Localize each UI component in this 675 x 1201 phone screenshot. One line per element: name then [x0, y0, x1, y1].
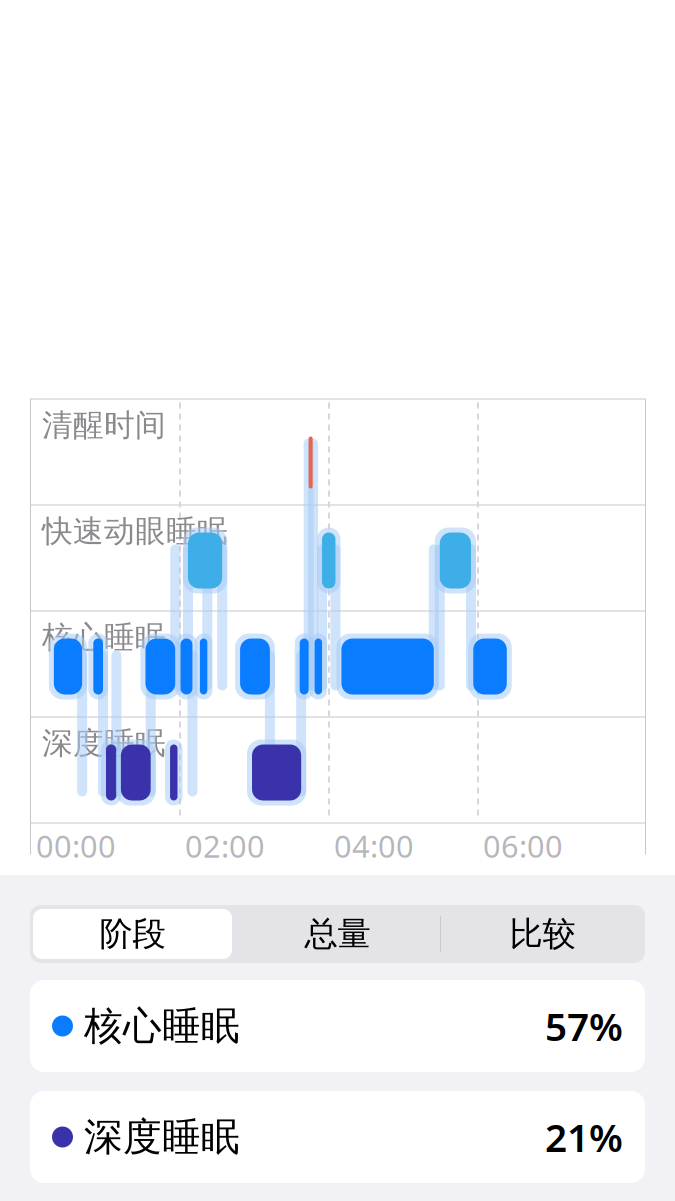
staticText: 阶段	[99, 913, 165, 954]
staticText: 清醒时间	[42, 406, 166, 444]
staticText: 02:00	[185, 825, 265, 866]
button[interactable]: 核心睡眠	[30, 980, 645, 1072]
staticText: 比较	[509, 913, 575, 954]
staticText: 快速动眼睡眠	[42, 512, 228, 550]
staticText: 深度睡眠	[84, 1113, 240, 1161]
staticText: 04:00	[334, 825, 414, 866]
button[interactable]: 总量	[235, 905, 440, 963]
staticText: 00:00	[36, 825, 116, 866]
staticText: 06:00	[483, 825, 563, 866]
button[interactable]: 阶段	[30, 905, 235, 963]
staticText: 57%	[545, 1000, 623, 1052]
staticText: 21%	[545, 1111, 623, 1163]
staticText: 总量	[304, 913, 370, 954]
staticText: 核心睡眠	[42, 618, 166, 656]
staticText: 核心睡眠	[84, 1002, 240, 1050]
button[interactable]: 比较	[440, 905, 645, 963]
button[interactable]: 深度睡眠	[30, 1091, 645, 1183]
staticText: 深度睡眠	[42, 724, 166, 762]
